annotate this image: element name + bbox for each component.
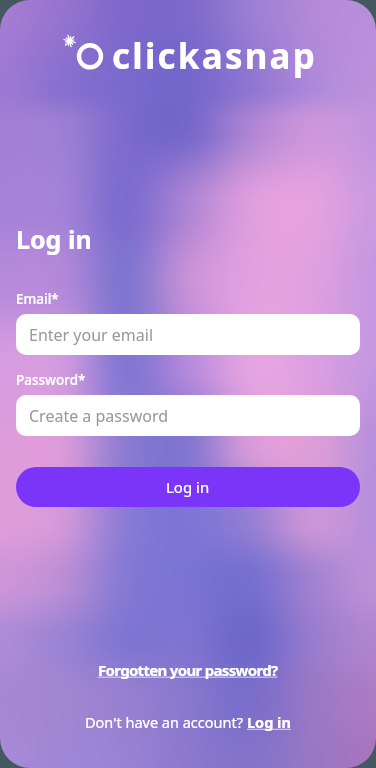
staticText: Enter your email — [29, 324, 154, 346]
button[interactable]: Create a password — [16, 395, 360, 436]
button[interactable]: ClickASnap — [0, 0, 376, 768]
button[interactable]: Log in — [16, 467, 360, 507]
button[interactable]: Enter your email — [16, 314, 360, 355]
staticText: Log in — [247, 712, 291, 732]
staticText: Password* — [16, 371, 86, 389]
staticText: clickasnap — [112, 32, 318, 80]
staticText: Don't have an account? — [85, 712, 247, 732]
button[interactable]: Forgotten your password? — [92, 658, 284, 682]
staticText: Log in — [166, 477, 210, 497]
staticText: Create a password — [29, 405, 169, 427]
staticText: Email* — [16, 290, 59, 308]
button[interactable]: Log in — [247, 712, 291, 732]
staticText: Log in — [16, 222, 92, 256]
staticText: Forgotten your password? — [98, 660, 278, 680]
